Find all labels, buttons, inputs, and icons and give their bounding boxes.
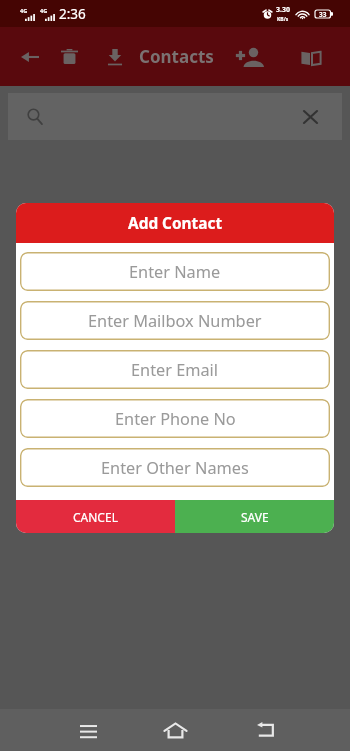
staticText: Enter Mailbox Number [88, 310, 262, 332]
staticText: Enter Name [129, 261, 221, 283]
button[interactable]: Search contacts [8, 93, 342, 140]
button[interactable]: Add Contact [16, 203, 334, 243]
staticText: Contacts [139, 45, 214, 68]
button[interactable]: Address book [291, 37, 331, 77]
button[interactable]: Enter Email [20, 350, 330, 389]
staticText: 4G [40, 7, 48, 14]
staticText: 2:36 [59, 5, 86, 23]
staticText: SAVE [241, 509, 269, 525]
staticText: Enter Phone No [115, 408, 236, 430]
staticText: KB/s [277, 16, 289, 23]
staticText: Enter Email [131, 359, 219, 381]
button[interactable]: CANCEL [16, 500, 175, 533]
button[interactable]: SAVE [175, 500, 334, 533]
staticText: 3.30 [276, 5, 290, 15]
staticText: 33 [319, 10, 327, 18]
button[interactable]: Add contact [230, 37, 270, 77]
button[interactable]: Delete [49, 37, 89, 77]
button[interactable]: Back [10, 37, 50, 77]
staticText: Enter Other Names [101, 457, 249, 479]
button[interactable]: Enter Other Names [20, 448, 330, 487]
button[interactable]: Home [151, 709, 199, 751]
staticText: CANCEL [73, 509, 118, 525]
button[interactable]: Enter Phone No [20, 399, 330, 438]
button[interactable]: Back [242, 709, 290, 751]
button[interactable]: Download [95, 37, 135, 77]
button[interactable]: Enter Mailbox Number [20, 301, 330, 340]
button[interactable]: Recent apps [64, 709, 112, 751]
staticText: Add Contact [128, 213, 223, 234]
button[interactable]: Clear search [299, 106, 321, 128]
button[interactable]: Enter Name [20, 252, 330, 291]
staticText: 4G [20, 7, 28, 14]
